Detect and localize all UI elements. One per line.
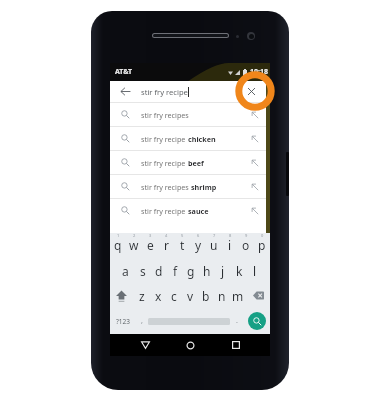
staticText: ,: [141, 316, 143, 326]
staticText: i: [228, 237, 232, 253]
staticText: y: [195, 237, 202, 253]
button[interactable]: Shift: [110, 283, 133, 308]
staticText: w: [129, 237, 139, 253]
staticText: .: [236, 316, 238, 326]
staticText: 2: [133, 233, 136, 238]
button[interactable]: s: [134, 258, 151, 283]
staticText: stir fry recipes: [141, 110, 189, 120]
staticText: m: [232, 288, 244, 304]
staticText: a: [122, 263, 129, 279]
button[interactable]: m: [230, 283, 246, 308]
staticText: c: [171, 288, 177, 304]
staticText: f: [173, 263, 178, 279]
staticText: x: [155, 288, 162, 304]
staticText: AT&T: [115, 67, 133, 77]
staticText: d: [155, 263, 163, 279]
staticText: u: [210, 237, 218, 253]
button[interactable]: Clear search: [235, 71, 275, 111]
button[interactable]: Back: [123, 334, 168, 356]
button[interactable]: z: [133, 283, 150, 308]
button[interactable]: Recents: [213, 334, 258, 356]
button[interactable]: g: [183, 258, 199, 283]
button[interactable]: l: [247, 258, 263, 283]
staticText: 1: [117, 233, 120, 238]
button[interactable]: Home: [168, 334, 213, 356]
staticText: b: [202, 288, 210, 304]
staticText: h: [203, 263, 211, 279]
button[interactable]: 5: [174, 233, 190, 258]
button[interactable]: Back: [110, 81, 141, 102]
button[interactable]: [148, 308, 230, 334]
staticText: 7: [213, 233, 216, 238]
button[interactable]: v: [182, 283, 198, 308]
staticText: stir fry recipes: [141, 182, 191, 192]
button[interactable]: 0: [254, 233, 270, 258]
button[interactable]: Search: [243, 308, 270, 334]
button[interactable]: k: [231, 258, 247, 283]
staticText: stir fry recipe: [141, 158, 188, 168]
button[interactable]: stir fry recipes: [110, 175, 266, 198]
staticText: k: [236, 263, 243, 279]
staticText: s: [140, 263, 146, 279]
staticText: chicken: [188, 134, 216, 144]
staticText: sauce: [188, 206, 209, 216]
staticText: 10:18: [250, 67, 268, 77]
staticText: e: [147, 237, 154, 253]
staticText: l: [253, 263, 257, 279]
staticText: t: [180, 237, 185, 253]
staticText: 4: [165, 233, 168, 238]
button[interactable]: f: [167, 258, 183, 283]
staticText: v: [187, 288, 194, 304]
button[interactable]: Clear query: [237, 81, 266, 102]
staticText: shrimp: [191, 182, 217, 192]
button[interactable]: a: [117, 258, 134, 283]
button[interactable]: ?123: [110, 308, 135, 334]
staticText: 5: [181, 233, 184, 238]
staticText: o: [242, 237, 250, 253]
staticText: n: [218, 288, 226, 304]
staticText: p: [258, 237, 266, 253]
button[interactable]: 1: [110, 233, 126, 258]
staticText: 8: [229, 233, 232, 238]
button[interactable]: b: [198, 283, 214, 308]
staticText: z: [139, 288, 145, 304]
staticText: stir fry recipe: [141, 206, 188, 216]
staticText: 6: [197, 233, 200, 238]
staticText: stir fry recipe: [141, 87, 188, 97]
button[interactable]: 8: [222, 233, 238, 258]
button[interactable]: 6: [190, 233, 206, 258]
button[interactable]: n: [214, 283, 230, 308]
button[interactable]: 3: [142, 233, 158, 258]
staticText: g: [187, 263, 195, 279]
staticText: q: [114, 237, 122, 253]
button[interactable]: 2: [126, 233, 142, 258]
button[interactable]: c: [166, 283, 182, 308]
button[interactable]: Backspace: [246, 283, 270, 308]
staticText: ?123: [116, 317, 130, 326]
staticText: 0: [261, 233, 264, 238]
button[interactable]: 7: [206, 233, 222, 258]
button[interactable]: h: [199, 258, 215, 283]
button[interactable]: d: [151, 258, 167, 283]
staticText: 9: [245, 233, 248, 238]
staticText: 3: [149, 233, 152, 238]
button[interactable]: x: [150, 283, 166, 308]
staticText: beef: [188, 158, 204, 168]
button[interactable]: 9: [238, 233, 254, 258]
staticText: r: [164, 237, 169, 253]
staticText: j: [221, 263, 225, 279]
staticText: stir fry recipe: [141, 134, 188, 144]
button[interactable]: j: [215, 258, 231, 283]
button[interactable]: stir fry recipe: [110, 151, 266, 174]
button[interactable]: 4: [158, 233, 174, 258]
button[interactable]: ,: [135, 308, 148, 334]
button[interactable]: stir fry recipe: [110, 199, 266, 222]
button[interactable]: stir fry recipe: [110, 127, 266, 150]
button[interactable]: stir fry recipes: [110, 103, 266, 126]
